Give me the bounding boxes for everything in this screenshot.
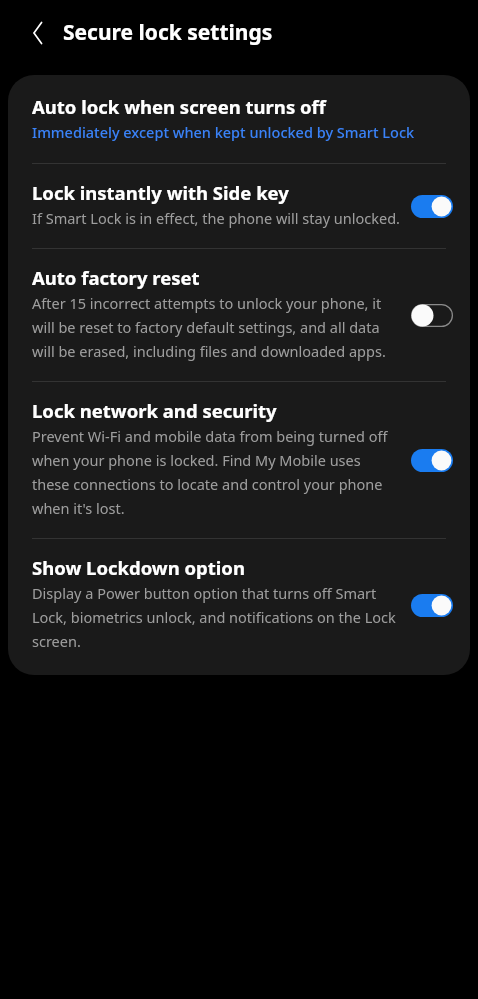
staticText: Lock instantly with Side key [32, 181, 289, 205]
staticText: After 15 incorrect attempts to unlock yo… [32, 291, 400, 363]
button[interactable]: Lock network and security [8, 382, 470, 538]
button[interactable]: Auto factory reset [8, 249, 470, 381]
staticText: Lock network and security [32, 399, 277, 423]
button[interactable]: Toggle on [406, 445, 458, 475]
button[interactable]: Auto lock when screen turns off [8, 75, 470, 163]
staticText: If Smart Lock is in effect, the phone wi… [32, 206, 400, 230]
button[interactable]: Back [16, 11, 60, 55]
button[interactable]: Show Lockdown option [8, 539, 470, 675]
button[interactable]: Toggle on [406, 191, 458, 221]
staticText: Immediately except when kept unlocked by… [32, 120, 415, 144]
staticText: Show Lockdown option [32, 556, 245, 580]
button[interactable]: Toggle off [406, 300, 458, 330]
button[interactable]: Toggle on [406, 590, 458, 620]
staticText: Auto lock when screen turns off [32, 95, 326, 119]
staticText: Display a Power button option that turns… [32, 581, 400, 653]
staticText: Secure lock settings [63, 20, 273, 46]
staticText: Auto factory reset [32, 266, 200, 290]
button[interactable]: Lock instantly with Side key [8, 164, 470, 248]
staticText: Prevent Wi-Fi and mobile data from being… [32, 424, 400, 520]
